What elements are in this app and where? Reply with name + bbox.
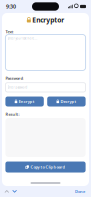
button[interactable]: Done — [73, 187, 87, 196]
staticText: Enter password — [8, 86, 28, 89]
button[interactable]: Previous field — [3, 188, 11, 195]
staticText: Enter your text here... — [8, 37, 38, 40]
button[interactable]: Copy to Clipboard — [5, 161, 86, 172]
staticText: Copy to Clipboard — [30, 164, 65, 170]
button[interactable]: Decrypt — [47, 96, 86, 106]
staticText: Done — [75, 189, 85, 194]
staticText: Encryptor — [32, 16, 64, 24]
staticText: 9:30 — [6, 3, 16, 10]
staticText: Password: — [5, 76, 24, 81]
staticText: Result: — [5, 112, 19, 117]
button[interactable]: Encrypt — [5, 96, 44, 106]
staticText: Text: — [5, 29, 14, 34]
staticText: Encrypt — [19, 99, 35, 104]
button[interactable]: Next field — [11, 188, 19, 195]
staticText: Decrypt — [60, 99, 76, 104]
